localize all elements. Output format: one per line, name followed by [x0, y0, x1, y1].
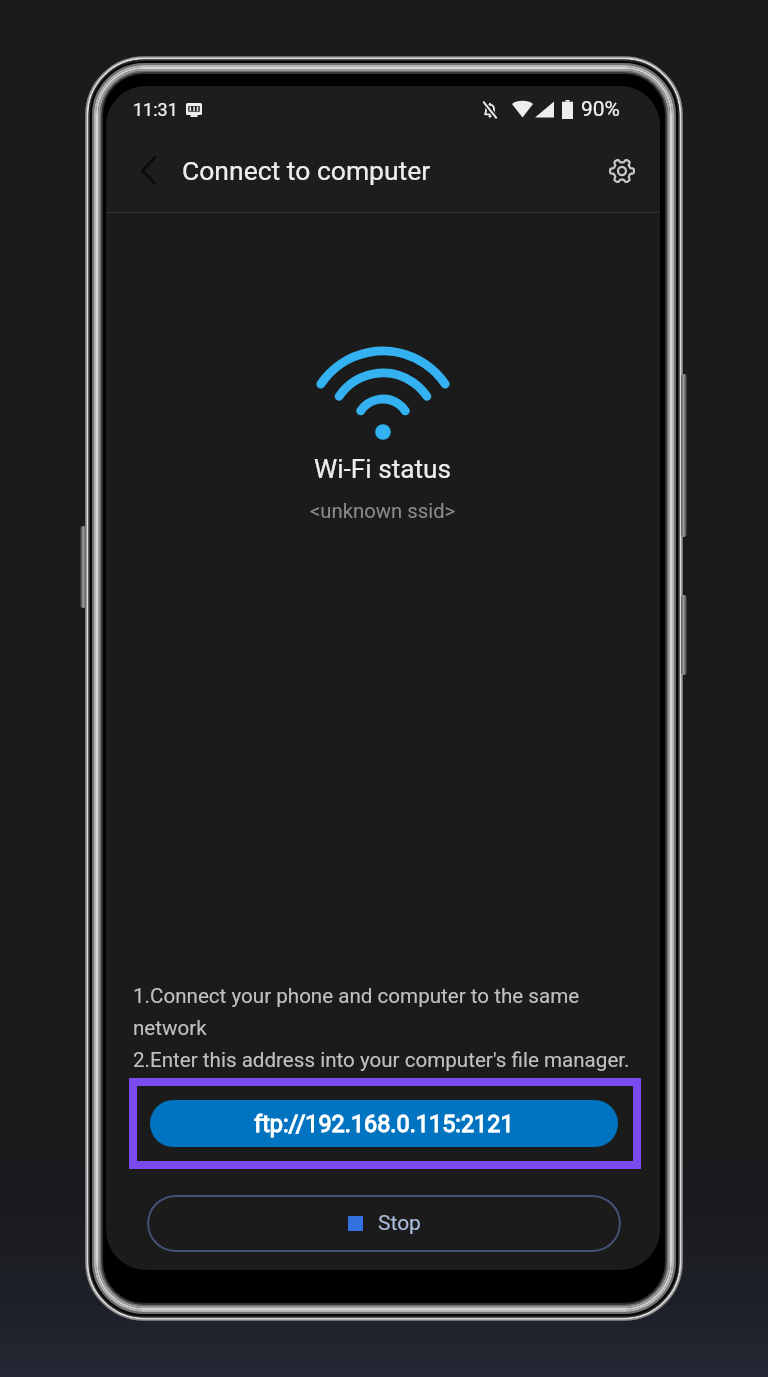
staticText: 90% — [581, 97, 620, 122]
staticText: Stop — [378, 1211, 421, 1236]
staticText: 11:31 — [133, 99, 178, 120]
button[interactable]: ftp://192.168.0.115:2121 — [150, 1100, 618, 1147]
button[interactable]: Stop — [147, 1195, 621, 1252]
staticText: 1.Connect your phone and computer to the… — [133, 984, 630, 1072]
staticText: ftp://192.168.0.115:2121 — [254, 1110, 514, 1137]
staticText: <unknown ssid> — [310, 499, 456, 523]
staticText: Wi-Fi status — [314, 454, 452, 485]
button[interactable]: Back — [125, 146, 173, 194]
button[interactable]: Settings — [600, 149, 644, 193]
staticText: Connect to computer — [182, 155, 431, 186]
